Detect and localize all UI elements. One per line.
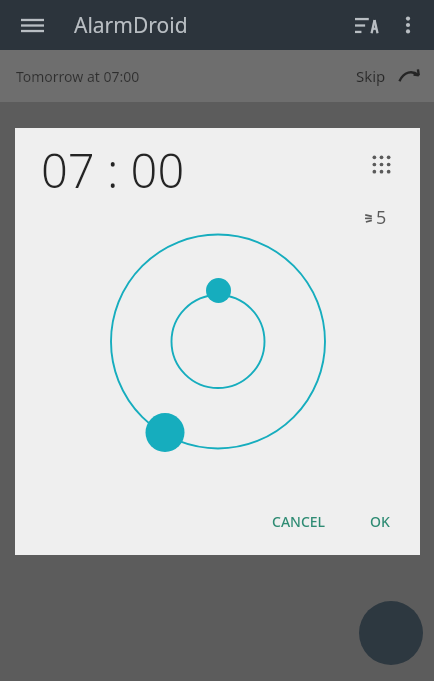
button[interactable]: Snooze 5 minutes [365,200,387,234]
button[interactable]: Add alarm [359,601,423,665]
button[interactable]: Skip [356,62,424,90]
button[interactable]: Switch to keypad input [359,142,403,186]
button[interactable]: More options [388,5,428,45]
other: Skip next alarm [396,62,424,90]
staticText: AlarmDroid [74,11,188,40]
button[interactable]: OK [360,502,400,541]
staticText: Tomorrow at 07:00 [16,67,140,86]
staticText: 07 : 00 [41,138,185,202]
button[interactable]: Open navigation drawer [10,3,54,47]
staticText: CANCEL [272,512,326,531]
button[interactable]: Sort alarms [344,3,388,47]
staticText: OK [370,512,390,531]
button[interactable]: Time picker dial [15,128,420,555]
button[interactable]: CANCEL [262,502,336,541]
staticText: Skip [356,66,386,86]
button[interactable]: Tomorrow at 07:00 [0,50,434,102]
staticText: 5 [376,205,387,230]
